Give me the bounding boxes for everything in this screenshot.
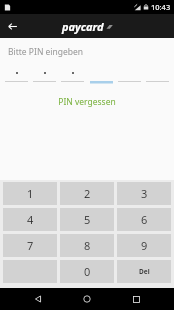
button[interactable]: Startbildschirm — [76, 288, 98, 310]
button[interactable]: 6 — [117, 208, 171, 231]
staticText: 6 — [141, 212, 148, 227]
button[interactable]: 8 — [60, 234, 114, 257]
button[interactable]: Zurück — [27, 288, 49, 310]
button[interactable]: 1 — [3, 182, 57, 205]
button[interactable]: Übersicht — [125, 288, 147, 310]
button[interactable]: 3 — [117, 182, 171, 205]
button[interactable]: 2 — [60, 182, 114, 205]
staticText: 10:43 — [151, 2, 171, 12]
button[interactable]: Del — [117, 260, 171, 283]
staticText: 9 — [141, 238, 148, 253]
staticText: paycard — [62, 19, 104, 34]
staticText: 2 — [84, 186, 91, 201]
button[interactable]: PIN vergessen — [54, 94, 120, 110]
staticText: 0 — [84, 264, 91, 279]
button[interactable]: 5 — [60, 208, 114, 231]
staticText: 8 — [84, 238, 91, 253]
staticText: 5 — [84, 212, 91, 227]
button[interactable]: 9 — [117, 234, 171, 257]
staticText: 1 — [27, 186, 34, 201]
button[interactable]: Zurück — [0, 14, 24, 38]
staticText: Del — [139, 267, 150, 276]
button[interactable]: 4 — [3, 208, 57, 231]
staticText: 3 — [141, 186, 148, 201]
staticText: 4 — [27, 212, 34, 227]
staticText: 7 — [27, 238, 34, 253]
button[interactable]: 7 — [3, 234, 57, 257]
staticText: Bitte PIN eingeben — [8, 46, 84, 58]
button[interactable]: 0 — [60, 260, 114, 283]
